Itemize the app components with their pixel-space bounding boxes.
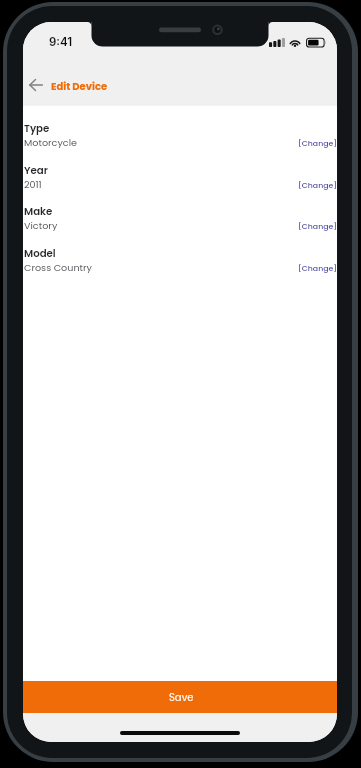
staticText: Save <box>169 690 194 704</box>
button[interactable]: Save <box>23 681 337 713</box>
button[interactable]: [Change] <box>298 221 337 232</box>
staticText: [Change] <box>298 138 337 149</box>
staticText: [Change] <box>298 180 337 191</box>
staticText: [Change] <box>298 263 337 274</box>
staticText: 9:41 <box>49 35 73 49</box>
staticText: Year <box>24 163 48 177</box>
button[interactable]: [Change] <box>298 180 337 191</box>
button[interactable]: [Change] <box>298 263 337 274</box>
staticText: Make <box>24 204 53 218</box>
staticText: Cross Country <box>24 261 93 273</box>
staticText: Victory <box>24 219 58 231</box>
button[interactable]: Back <box>24 73 48 97</box>
staticText: 2011 <box>24 178 42 190</box>
staticText: Model <box>24 246 56 260</box>
staticText: Type <box>24 121 50 135</box>
button[interactable]: [Change] <box>298 138 337 149</box>
staticText: Edit Device <box>51 79 108 93</box>
staticText: Motorcycle <box>24 136 77 148</box>
staticText: [Change] <box>298 221 337 232</box>
